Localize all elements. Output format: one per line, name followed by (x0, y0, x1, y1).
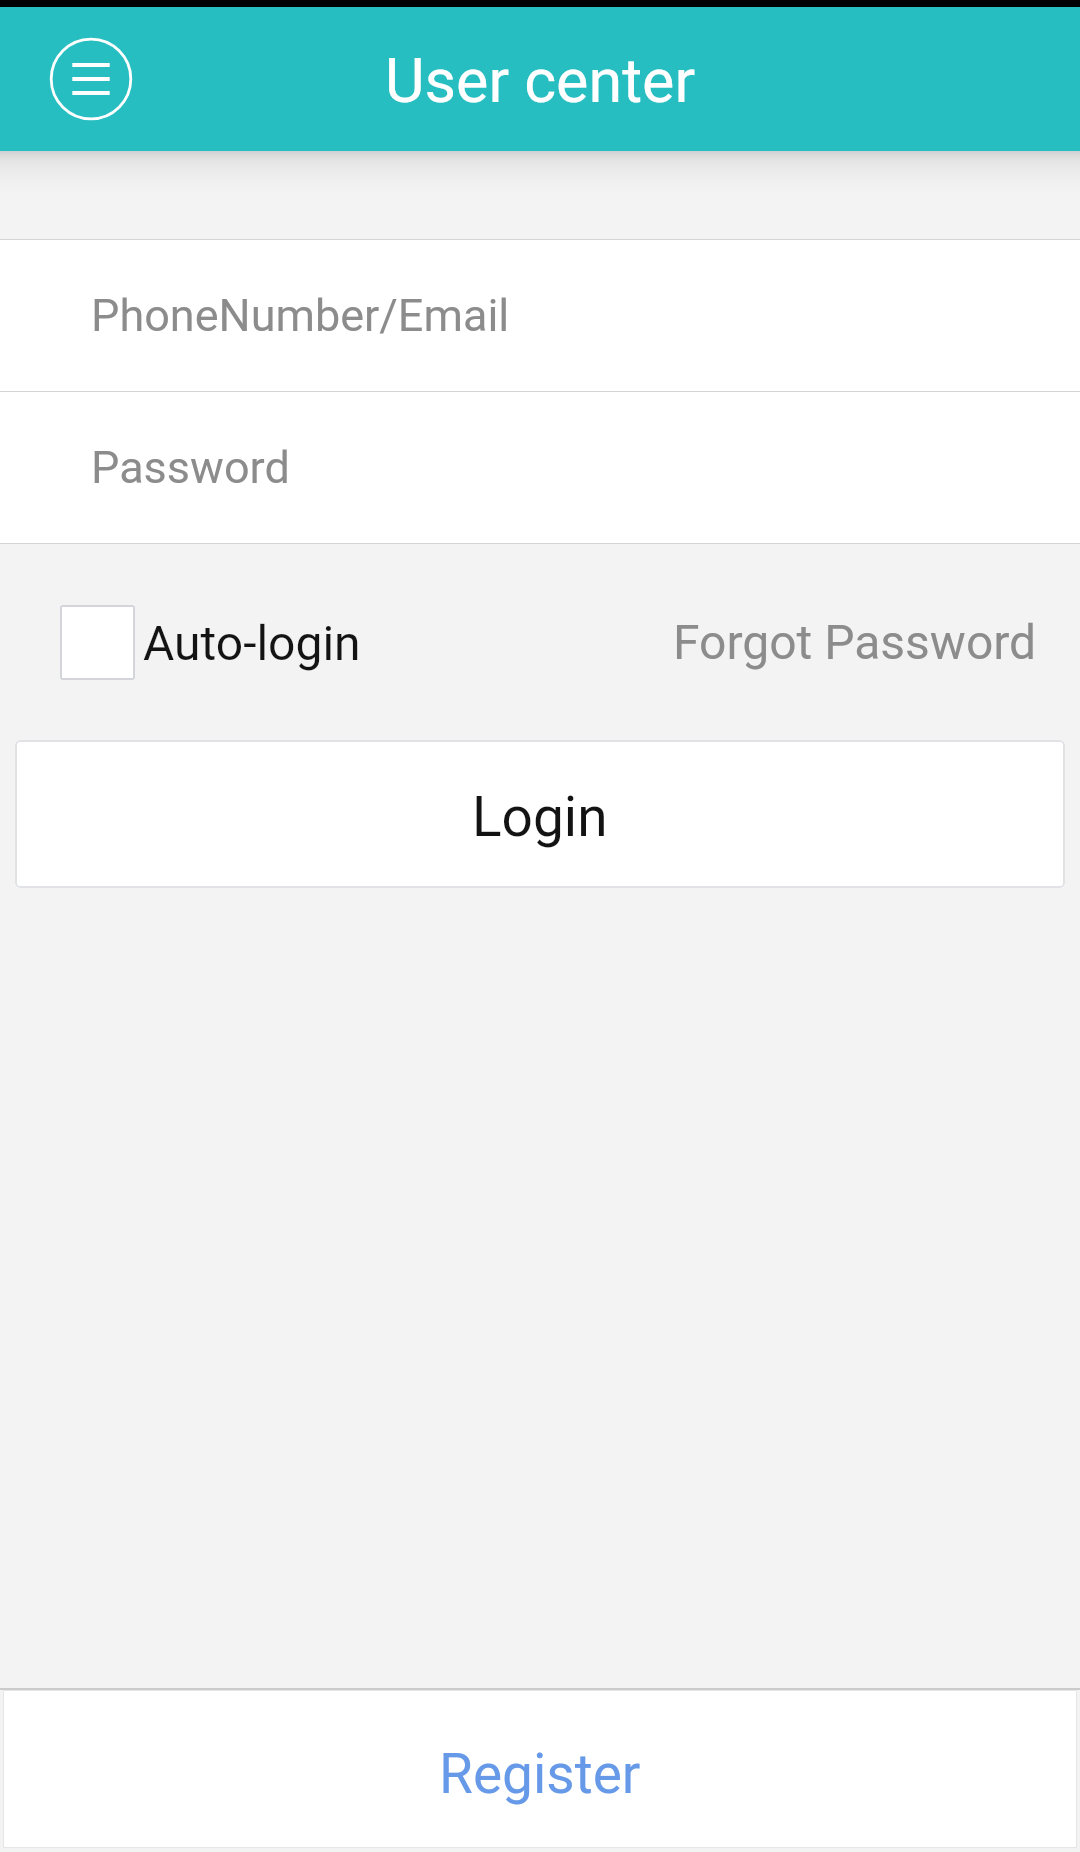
button[interactable]: Menu (46, 34, 136, 124)
staticText: PhoneNumber/Email (91, 289, 510, 342)
button[interactable]: PhoneNumber/Email (0, 240, 1080, 391)
button[interactable]: Register (3, 1690, 1077, 1848)
button[interactable]: Password (0, 392, 1080, 543)
staticText: Register (439, 1742, 641, 1806)
button[interactable]: Login (15, 740, 1065, 888)
staticText: User center (385, 45, 696, 116)
staticText: Auto-login (143, 615, 361, 671)
staticText: Login (472, 785, 608, 849)
button[interactable]: Forgot Password (673, 614, 1037, 670)
button[interactable]: Auto-login (60, 605, 361, 680)
staticText: Password (91, 441, 290, 494)
